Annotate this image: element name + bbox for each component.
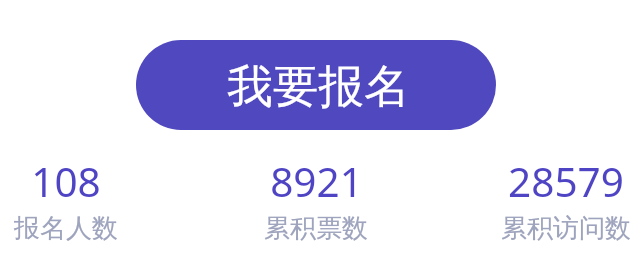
staticText: 报名人数 (14, 212, 118, 245)
staticText: 累积票数 (264, 212, 368, 245)
staticText: 28579 (508, 154, 624, 209)
staticText: 108 (31, 154, 101, 209)
staticText: 累积访问数 (501, 212, 631, 245)
button[interactable]: 108 (14, 154, 118, 245)
staticText: 8921 (270, 154, 363, 209)
staticText: 我要报名 (227, 58, 410, 115)
button[interactable]: 28579 (501, 154, 631, 245)
button[interactable]: 我要报名 (136, 40, 496, 130)
button[interactable]: 8921 (264, 154, 368, 245)
